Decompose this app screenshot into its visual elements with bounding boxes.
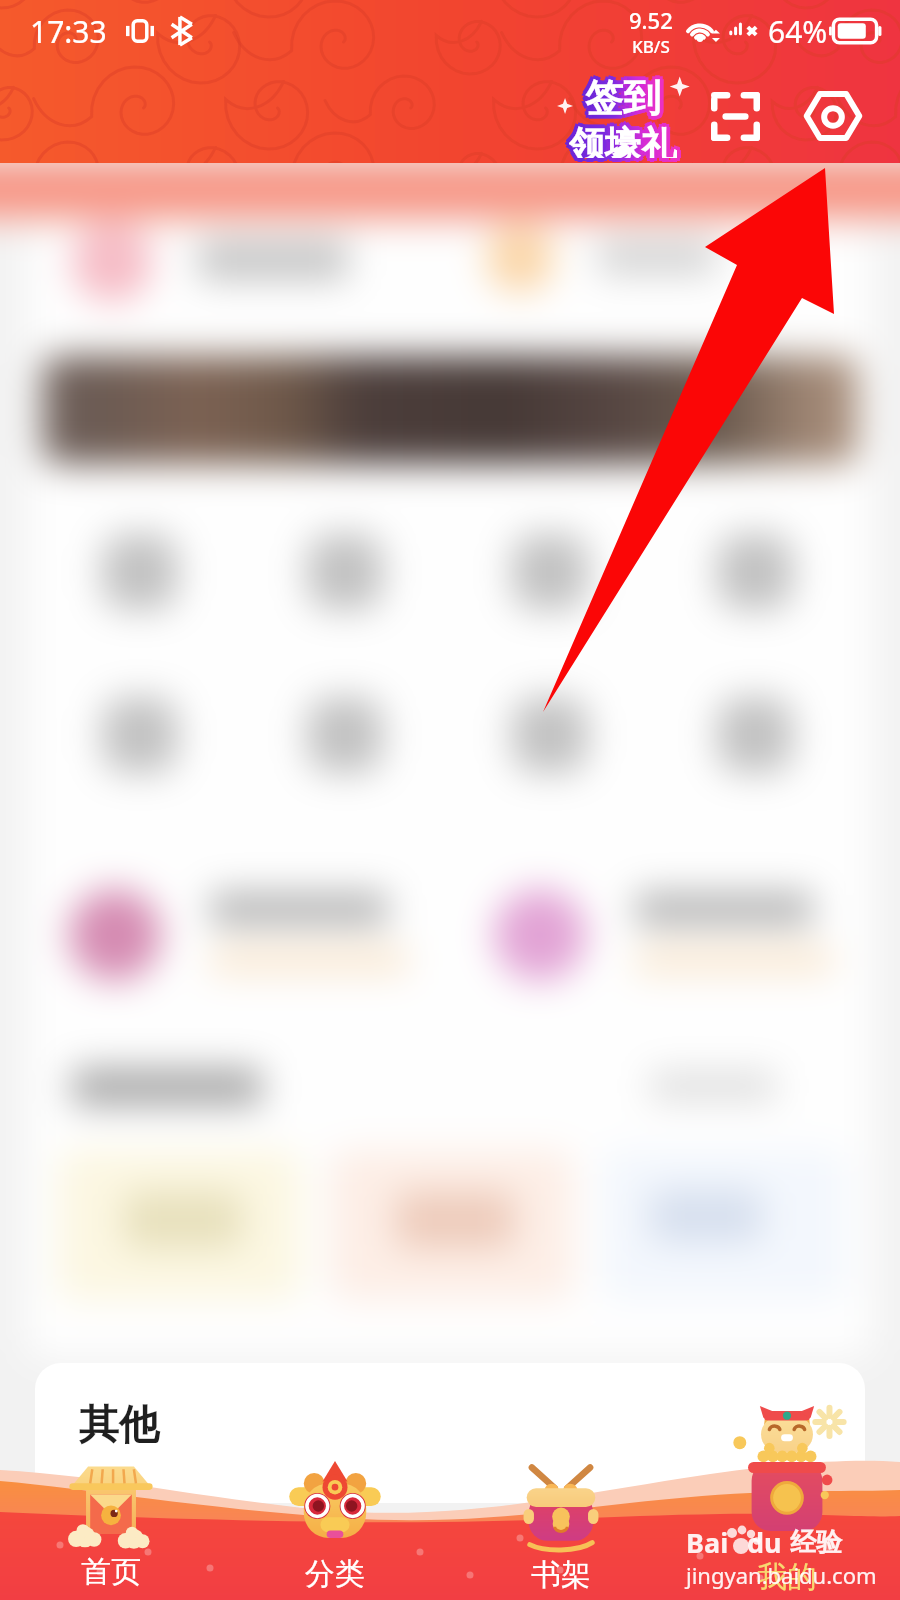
staticText: 领壕礼 [572, 125, 680, 161]
button[interactable]: 我的 [698, 1404, 876, 1596]
staticText: 签到 [588, 77, 664, 125]
staticText: KB/S [632, 35, 670, 58]
staticText: 签到 [581, 74, 657, 122]
button[interactable]: 书架 [472, 1460, 650, 1594]
button[interactable]: Camera [798, 81, 868, 151]
staticText: 领壕礼 [566, 125, 674, 161]
staticText: 领壕礼 [565, 122, 673, 158]
staticText: 经验 [790, 1526, 842, 1559]
staticText: jingyan.baidu.com [686, 1560, 877, 1590]
button[interactable]: 首页 [22, 1457, 200, 1591]
staticText: 签到 [582, 77, 658, 125]
staticText: 签到 [582, 71, 658, 119]
staticText: 我的 [757, 1558, 817, 1596]
staticText: 签到 [589, 74, 665, 122]
staticText: 签到 [585, 78, 661, 126]
staticText: du [747, 1524, 782, 1561]
staticText: 签到 [585, 70, 661, 118]
button[interactable]: Scan [700, 81, 770, 151]
staticText: 9.52 [629, 5, 673, 35]
staticText: 书架 [531, 1556, 591, 1594]
staticText: 领壕礼 [566, 119, 674, 155]
staticText: 签到 [588, 71, 664, 119]
staticText: 分类 [305, 1555, 365, 1593]
staticText: 17:33 [30, 11, 107, 52]
staticText: 领壕礼 [572, 119, 680, 155]
staticText: 其他 [79, 1399, 159, 1449]
staticText: 领壕礼 [573, 122, 681, 158]
button[interactable]: 分类 [246, 1459, 424, 1593]
button[interactable]: 签到 [560, 74, 686, 158]
staticText: 领壕礼 [569, 118, 677, 154]
staticText: 签到 [585, 74, 661, 122]
staticText: 64% [768, 11, 828, 52]
staticText: 领壕礼 [569, 126, 677, 162]
staticText: Bai [686, 1524, 729, 1561]
staticText: 首页 [81, 1553, 141, 1591]
staticText: 领壕礼 [569, 122, 677, 158]
